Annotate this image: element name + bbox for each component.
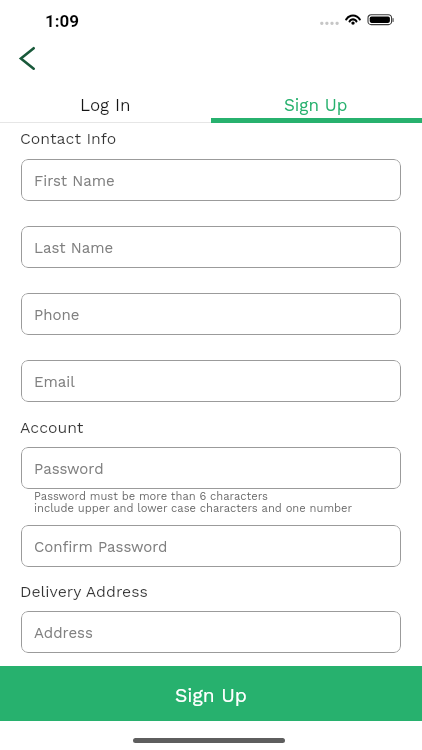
button[interactable]: Sign Up — [0, 666, 422, 721]
staticText: First Name — [34, 172, 115, 190]
staticText: Delivery Address — [20, 582, 148, 601]
staticText: Address — [34, 624, 93, 642]
staticText: Account — [20, 418, 84, 437]
button[interactable]: Confirm Password — [21, 525, 401, 567]
button[interactable]: Log In — [0, 88, 211, 122]
staticText: Phone — [34, 306, 80, 324]
button[interactable]: Password — [21, 447, 401, 489]
staticText: Sign Up — [284, 95, 348, 115]
button[interactable]: Email — [21, 360, 401, 402]
button[interactable]: Address — [21, 611, 401, 653]
button[interactable]: Back — [4, 36, 50, 82]
button[interactable]: Sign Up — [211, 88, 422, 122]
staticText: Password — [34, 460, 104, 478]
button[interactable]: Last Name — [21, 226, 401, 268]
button[interactable]: First Name — [21, 159, 401, 201]
staticText: Last Name — [34, 239, 114, 257]
staticText: Sign Up — [175, 684, 247, 707]
staticText: Contact Info — [20, 129, 117, 148]
staticText: Password must be more than 6 characters … — [34, 490, 353, 515]
staticText: Email — [34, 373, 75, 391]
button[interactable]: Phone — [21, 293, 401, 335]
staticText: Log In — [80, 95, 131, 115]
staticText: Confirm Password — [34, 538, 168, 556]
staticText: 1:09 — [45, 11, 80, 31]
